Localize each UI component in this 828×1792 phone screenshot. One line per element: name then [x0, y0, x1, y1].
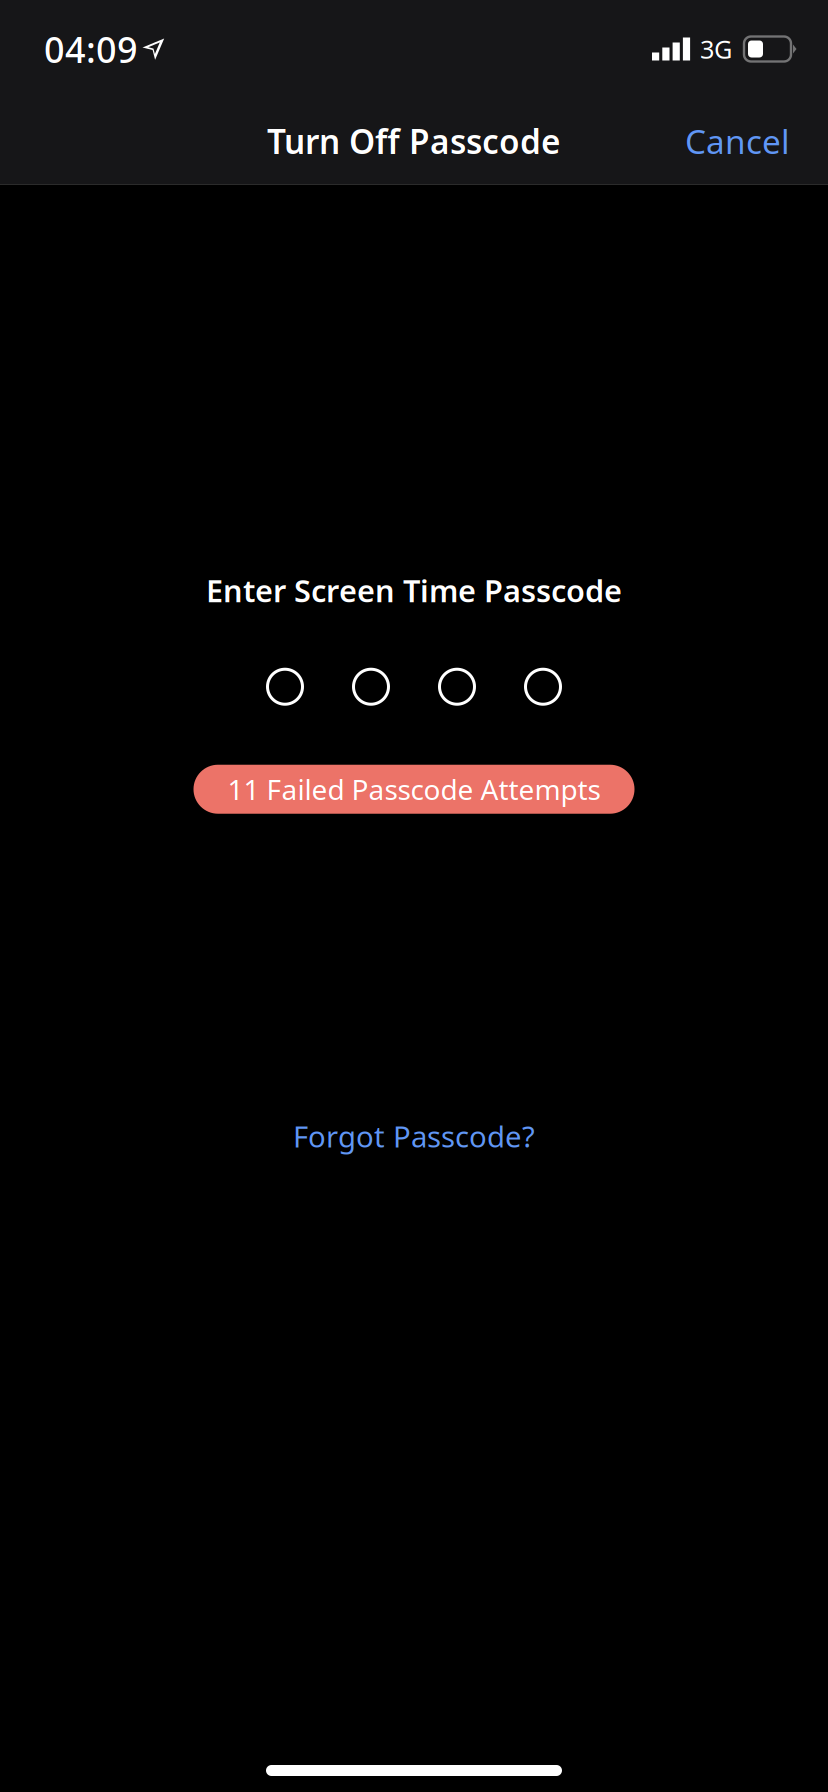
staticText: Forgot Passcode? [293, 1117, 535, 1156]
button[interactable]: Forgot Passcode? [265, 1103, 563, 1170]
staticText: Turn Off Passcode [267, 119, 561, 163]
staticText: Enter Screen Time Passcode [206, 570, 622, 611]
staticText: Cancel [685, 119, 790, 163]
button[interactable]: Cancel [671, 103, 804, 179]
staticText: 3G [700, 32, 732, 66]
staticText: 11 Failed Passcode Attempts [227, 771, 600, 808]
staticText: 04:09 [44, 25, 138, 73]
